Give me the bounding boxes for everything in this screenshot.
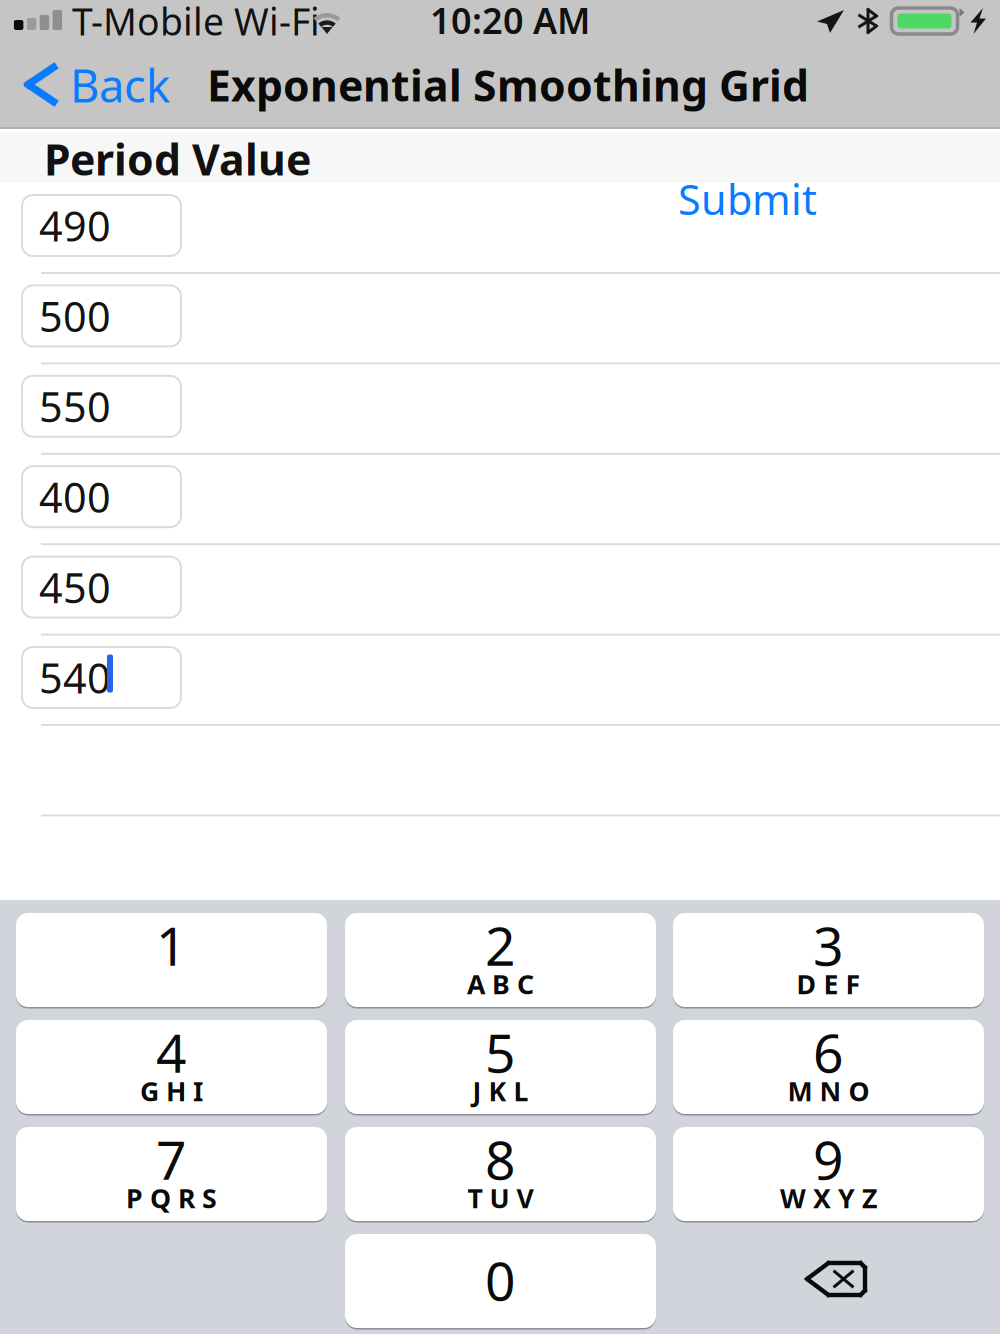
staticText: 540: [39, 650, 111, 705]
staticText: 3: [813, 910, 844, 980]
button[interactable]: 1: [16, 913, 327, 1007]
button[interactable]: 7: [16, 1127, 327, 1221]
staticText: P Q R S: [126, 1180, 217, 1216]
button[interactable]: 550: [22, 376, 181, 437]
staticText: T U V: [467, 1180, 533, 1216]
staticText: 1: [156, 910, 187, 980]
button[interactable]: 500: [22, 285, 181, 346]
staticText: Submit: [678, 172, 817, 226]
button[interactable]: 5: [345, 1020, 656, 1114]
staticText: 400: [39, 469, 111, 524]
button[interactable]: 0: [345, 1234, 656, 1328]
staticText: Period Value: [44, 131, 311, 187]
staticText: Back: [70, 55, 170, 115]
staticText: W X Y Z: [780, 1180, 877, 1216]
button[interactable]: 3: [673, 913, 984, 1007]
button[interactable]: Submit: [678, 171, 838, 227]
staticText: G H I: [140, 1073, 203, 1109]
staticText: J K L: [472, 1073, 528, 1109]
staticText: Exponential Smoothing Grid: [207, 57, 809, 113]
staticText: 6: [813, 1017, 844, 1087]
staticText: A B C: [467, 966, 534, 1002]
staticText: 0: [485, 1245, 516, 1315]
button[interactable]: 8: [345, 1127, 656, 1221]
staticText: D E F: [796, 966, 860, 1002]
staticText: 4: [156, 1017, 187, 1087]
button[interactable]: 540: [22, 647, 181, 708]
staticText: 550: [39, 379, 111, 434]
staticText: T-Mobile Wi-Fi: [72, 0, 320, 46]
staticText: 500: [39, 288, 111, 343]
staticText: 7: [156, 1124, 187, 1194]
staticText: 8: [485, 1124, 516, 1194]
staticText: 10:20 AM: [430, 0, 590, 44]
staticText: 490: [39, 198, 111, 253]
button[interactable]: 450: [22, 557, 181, 618]
staticText: 2: [485, 910, 516, 980]
button[interactable]: 4: [16, 1020, 327, 1114]
button[interactable]: 400: [22, 466, 181, 527]
button[interactable]: 6: [673, 1020, 984, 1114]
staticText: M N O: [787, 1073, 869, 1109]
button[interactable]: Delete: [673, 1234, 984, 1328]
staticText: 450: [39, 560, 111, 615]
button[interactable]: Back: [0, 52, 190, 128]
staticText: 5: [485, 1017, 516, 1087]
staticText: 9: [813, 1124, 844, 1194]
button[interactable]: 9: [673, 1127, 984, 1221]
button[interactable]: 2: [345, 913, 656, 1007]
button[interactable]: 490: [22, 195, 181, 256]
